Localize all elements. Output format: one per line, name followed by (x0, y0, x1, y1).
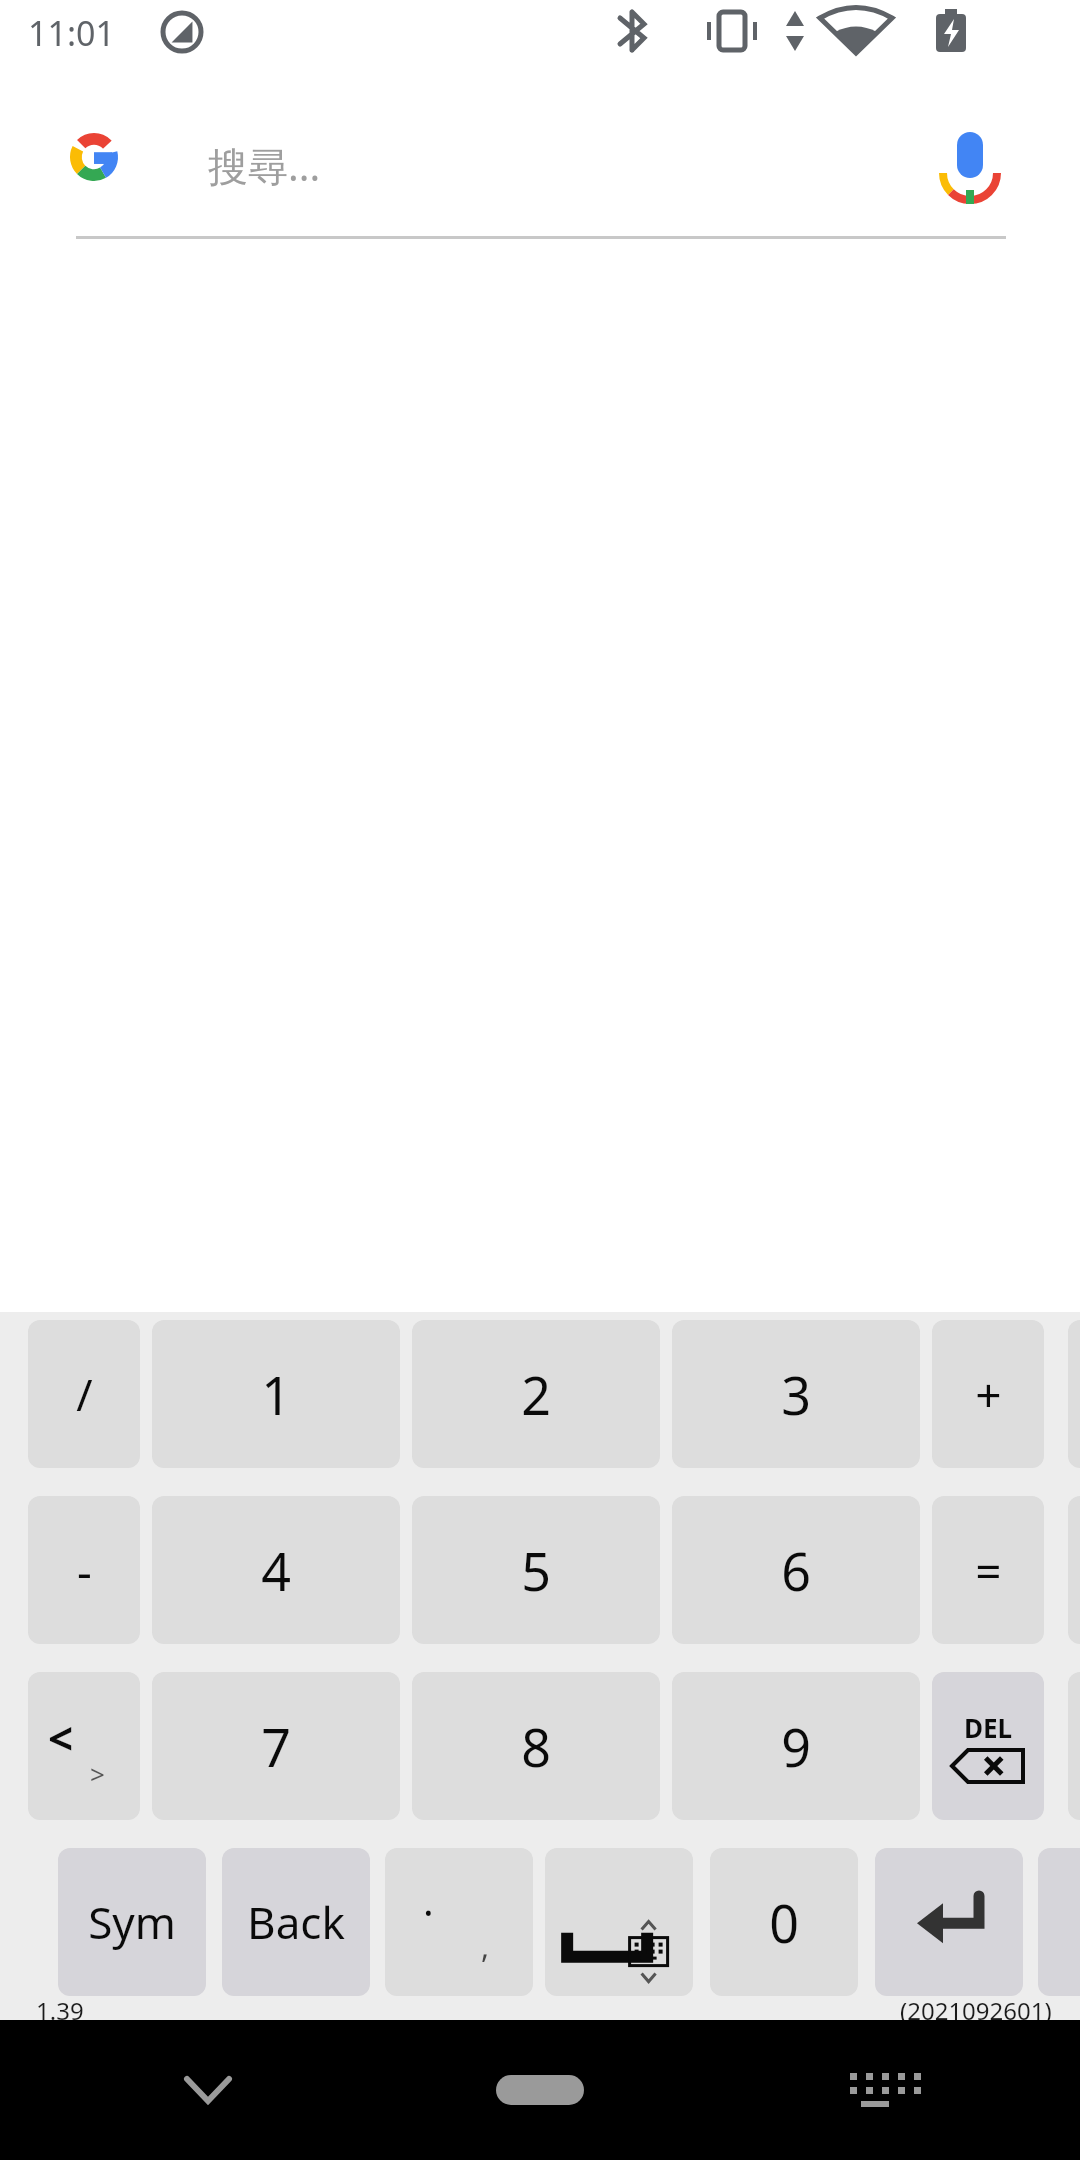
button[interactable]: Switch keyboard (828, 2050, 924, 2130)
button[interactable]: Sym (58, 1848, 206, 1996)
staticText: + (975, 1363, 1002, 1426)
other: Google (70, 133, 118, 181)
button[interactable]: Hide keyboard (160, 2050, 256, 2130)
other: Voice search (940, 128, 1000, 200)
staticText: DEL (964, 1710, 1013, 1745)
button[interactable]: 6 (672, 1496, 920, 1644)
staticText: - (77, 1539, 92, 1602)
staticText: , (481, 1926, 490, 1967)
button[interactable]: = (932, 1496, 1044, 1644)
button[interactable]: Back (222, 1848, 370, 1996)
button[interactable]: 7 (152, 1672, 400, 1820)
button[interactable]: 5 (412, 1496, 660, 1644)
staticText: Back (247, 1892, 345, 1952)
button[interactable]: - (28, 1496, 140, 1644)
staticText: 11:01 (28, 10, 115, 56)
button[interactable]: 9 (672, 1672, 920, 1820)
staticText: 1.39 (36, 1994, 84, 2027)
staticText: (2021092601) (900, 1994, 1052, 2027)
staticText: 9 (781, 1711, 811, 1782)
staticText: 6 (781, 1535, 811, 1606)
button[interactable]: Home (480, 2050, 600, 2130)
staticText: · (423, 1884, 434, 1938)
button[interactable]: + (932, 1320, 1044, 1468)
button[interactable]: 3 (672, 1320, 920, 1468)
button[interactable]: 2 (412, 1320, 660, 1468)
staticText: 8 (521, 1711, 551, 1782)
button[interactable]: 0 (710, 1848, 858, 1996)
staticText: 1 (261, 1359, 291, 1430)
button[interactable]: Delete (932, 1672, 1044, 1820)
staticText: 3 (781, 1359, 811, 1430)
staticText: > (90, 1756, 105, 1791)
staticText: 搜尋... (208, 138, 321, 193)
staticText: 4 (261, 1535, 291, 1606)
staticText: 0 (769, 1887, 799, 1958)
staticText: 5 (521, 1535, 551, 1606)
button[interactable]: Less than, greater than (28, 1672, 140, 1820)
button[interactable]: 4 (152, 1496, 400, 1644)
staticText: 2 (521, 1359, 551, 1430)
staticText: 7 (261, 1711, 291, 1782)
button[interactable]: Google (0, 100, 1080, 250)
button[interactable]: Space (545, 1848, 693, 1996)
staticText: Sym (88, 1892, 176, 1952)
button[interactable]: 8 (412, 1672, 660, 1820)
button[interactable]: Enter (875, 1848, 1023, 1996)
button[interactable]: / (28, 1320, 140, 1468)
button[interactable]: Period and comma (385, 1848, 533, 1996)
staticText: < (48, 1708, 74, 1768)
button[interactable]: 1 (152, 1320, 400, 1468)
staticText: / (76, 1364, 93, 1424)
staticText: = (975, 1539, 1002, 1602)
